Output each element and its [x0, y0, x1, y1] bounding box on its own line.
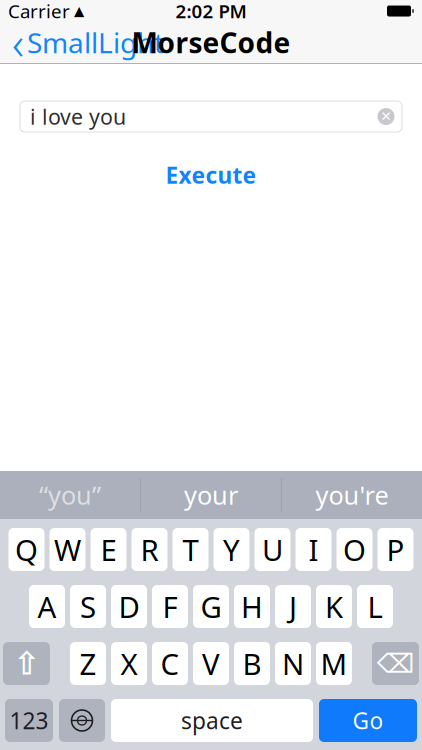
- button[interactable]: M: [316, 642, 352, 685]
- staticText: M: [320, 644, 347, 683]
- button[interactable]: F: [152, 585, 188, 628]
- button[interactable]: H: [234, 585, 270, 628]
- staticText: space: [181, 705, 243, 735]
- staticText: H: [241, 587, 263, 626]
- staticText: i love you: [30, 102, 126, 131]
- staticText: 123: [9, 705, 48, 735]
- staticText: L: [367, 587, 382, 626]
- button[interactable]: V: [193, 642, 229, 685]
- staticText: MorseCode: [131, 24, 290, 61]
- button[interactable]: space: [111, 699, 313, 742]
- button[interactable]: your: [141, 471, 281, 519]
- button[interactable]: J: [275, 585, 311, 628]
- button[interactable]: R: [131, 528, 167, 571]
- staticText: Execute: [165, 160, 256, 190]
- button[interactable]: D: [111, 585, 147, 628]
- staticText: Y: [223, 530, 240, 569]
- staticText: N: [282, 644, 304, 683]
- staticText: A: [37, 587, 56, 626]
- staticText: ⇧: [13, 645, 40, 682]
- staticText: K: [325, 587, 343, 626]
- button[interactable]: Clear text: [373, 103, 399, 129]
- staticText: “you”: [39, 478, 101, 512]
- staticText: S: [80, 587, 96, 626]
- button[interactable]: Next keyboard: [59, 699, 105, 742]
- button[interactable]: you're: [282, 471, 422, 519]
- button[interactable]: G: [193, 585, 229, 628]
- staticText: SmallLight: [27, 24, 164, 61]
- staticText: Q: [15, 530, 38, 569]
- button[interactable]: A: [29, 585, 65, 628]
- staticText: Z: [79, 644, 96, 683]
- button[interactable]: ‹: [0, 8, 164, 77]
- staticText: B: [242, 644, 261, 683]
- button[interactable]: Z: [70, 642, 106, 685]
- staticText: P: [386, 530, 404, 569]
- button[interactable]: “you”: [0, 471, 140, 519]
- button[interactable]: S: [70, 585, 106, 628]
- staticText: V: [202, 644, 220, 683]
- button[interactable]: Y: [213, 528, 249, 571]
- staticText: C: [160, 644, 179, 683]
- staticText: I: [308, 530, 318, 569]
- staticText: ✕: [380, 109, 391, 124]
- staticText: D: [118, 587, 139, 626]
- staticText: X: [120, 644, 137, 683]
- button[interactable]: W: [49, 528, 85, 571]
- staticText: J: [289, 587, 297, 626]
- staticText: ▲: [74, 3, 84, 18]
- staticText: T: [182, 530, 198, 569]
- button[interactable]: 123: [5, 699, 53, 742]
- staticText: U: [262, 530, 283, 569]
- staticText: 2:02 PM: [175, 0, 246, 23]
- staticText: E: [100, 530, 116, 569]
- staticText: W: [54, 530, 81, 569]
- staticText: Go: [352, 705, 383, 735]
- staticText: R: [140, 530, 158, 569]
- button[interactable]: U: [254, 528, 290, 571]
- button[interactable]: N: [275, 642, 311, 685]
- button[interactable]: L: [357, 585, 393, 628]
- button[interactable]: T: [172, 528, 208, 571]
- staticText: F: [162, 587, 177, 626]
- button[interactable]: Q: [8, 528, 44, 571]
- button[interactable]: P: [377, 528, 413, 571]
- button[interactable]: I: [295, 528, 331, 571]
- staticText: Carrier: [8, 0, 70, 23]
- button[interactable]: O: [336, 528, 372, 571]
- staticText: your: [184, 478, 238, 512]
- button[interactable]: Go: [319, 699, 417, 742]
- button[interactable]: E: [90, 528, 126, 571]
- button[interactable]: Execute: [149, 152, 272, 198]
- button[interactable]: K: [316, 585, 352, 628]
- staticText: G: [200, 587, 221, 626]
- button[interactable]: Delete: [372, 642, 419, 685]
- staticText: O: [343, 530, 366, 569]
- staticText: ‹: [12, 12, 24, 73]
- button[interactable]: C: [152, 642, 188, 685]
- button[interactable]: Shift: [3, 642, 50, 685]
- button[interactable]: X: [111, 642, 147, 685]
- staticText: you're: [315, 478, 388, 512]
- staticText: ⌫: [376, 648, 414, 679]
- button[interactable]: B: [234, 642, 270, 685]
